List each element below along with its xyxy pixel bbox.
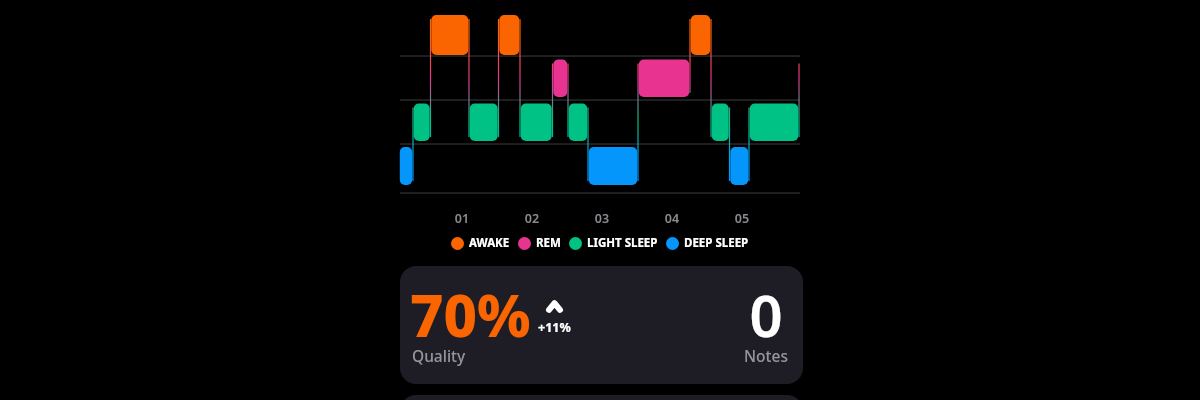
staticText: 01 <box>442 210 482 227</box>
staticText: 05 <box>722 210 762 227</box>
staticText: +11% <box>538 319 571 336</box>
button[interactable]: DEEP SLEEP <box>666 235 749 251</box>
staticText: 03 <box>582 210 622 227</box>
staticText: Notes <box>716 345 803 366</box>
button[interactable]: 70% <box>400 266 803 384</box>
staticText: Quality <box>412 345 466 366</box>
staticText: REM <box>536 235 561 251</box>
staticText: 02 <box>512 210 552 227</box>
staticText: LIGHT SLEEP <box>587 235 658 251</box>
button[interactable]: LIGHT SLEEP <box>569 235 658 251</box>
staticText: 0 <box>716 275 803 354</box>
button[interactable]: REM <box>518 235 561 251</box>
staticText: AWAKE <box>469 235 510 251</box>
staticText: DEEP SLEEP <box>684 235 749 251</box>
button[interactable]: AWAKE <box>451 235 510 251</box>
staticText: 70% <box>410 275 531 354</box>
button[interactable] <box>400 395 803 400</box>
staticText: 04 <box>652 210 692 227</box>
